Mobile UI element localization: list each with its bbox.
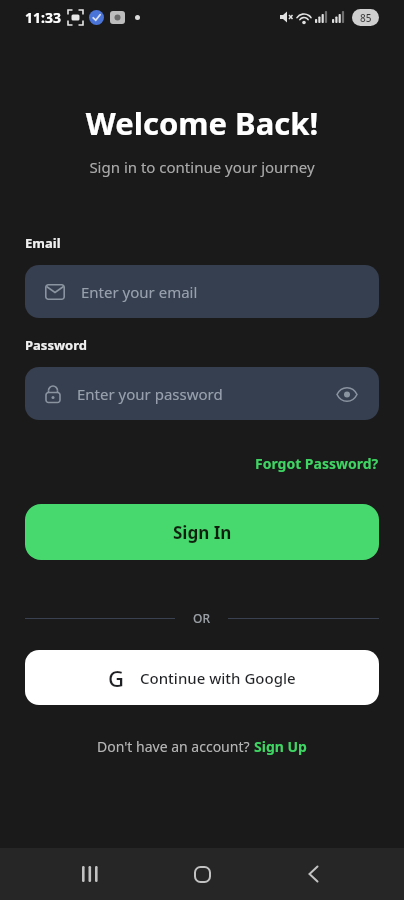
staticText: OR (193, 610, 210, 626)
staticText: Sign In (173, 521, 232, 544)
button[interactable]: Sign Up (254, 737, 307, 756)
staticText: Enter your password (77, 384, 223, 404)
staticText: Enter your email (81, 282, 198, 302)
staticText: Continue with Google (140, 668, 296, 688)
staticText: Don't have an account? (97, 737, 254, 756)
button[interactable]: Enter your email (25, 265, 379, 318)
staticText: 11:33 (25, 8, 61, 27)
button[interactable]: Forgot Password? (255, 454, 379, 473)
button[interactable]: Sign In (25, 504, 379, 560)
button[interactable] (35, 848, 147, 900)
staticText: Password (25, 336, 87, 354)
button[interactable] (147, 848, 258, 900)
staticText: 85 (360, 11, 372, 25)
staticText: Welcome Back! (0, 102, 404, 144)
staticText: Email (25, 234, 61, 252)
staticText: G (108, 663, 124, 693)
button[interactable]: G (25, 650, 379, 705)
button[interactable]: Enter your password (25, 367, 379, 420)
button[interactable] (327, 374, 367, 414)
button[interactable] (258, 848, 369, 900)
staticText: Sign in to continue your journey (0, 157, 404, 177)
